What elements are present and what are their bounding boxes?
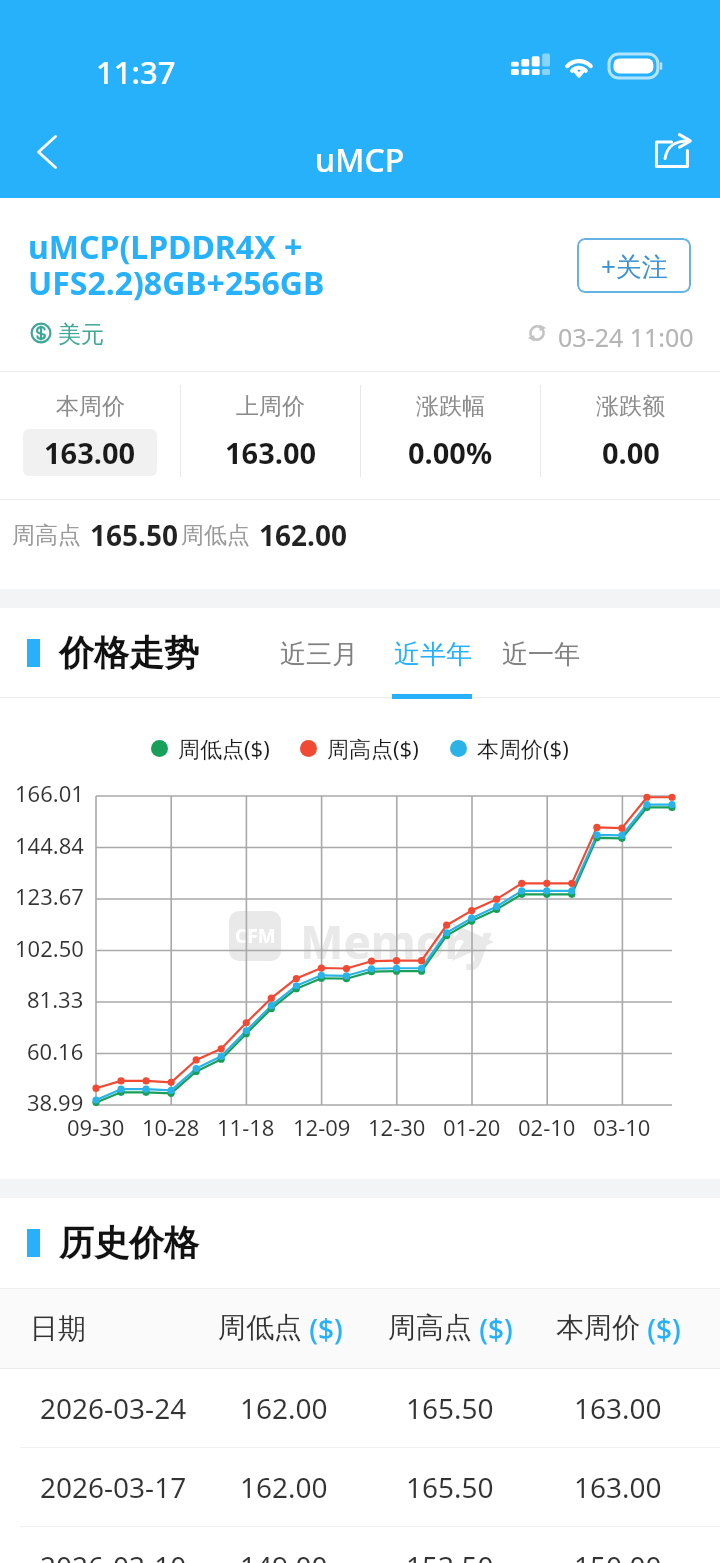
- staticText: 162.00: [240, 1389, 328, 1427]
- staticText: 涨跌幅: [416, 392, 485, 421]
- staticText: 价格走势: [59, 631, 199, 675]
- button[interactable]: 2026-03-24: [0, 1369, 720, 1447]
- staticText: 2026-03-17: [40, 1468, 187, 1506]
- staticText: 周低点($): [178, 733, 270, 763]
- staticText: 81.33: [27, 984, 84, 1014]
- staticText: 165.50: [90, 516, 178, 554]
- staticText: 0.00%: [408, 433, 493, 472]
- button[interactable]: 近半年: [376, 608, 489, 698]
- staticText: 102.50: [15, 933, 84, 963]
- staticText: 163.00: [574, 1389, 662, 1427]
- staticText: 11:37: [96, 51, 176, 93]
- button[interactable]: 2026-03-10: [0, 1527, 720, 1563]
- staticText: 本周价($): [477, 733, 569, 763]
- staticText: 165.50: [406, 1468, 494, 1506]
- staticText: ($): [302, 1310, 343, 1348]
- button[interactable]: 上周价: [181, 372, 360, 499]
- staticText: 12-30: [368, 1112, 426, 1142]
- staticText: Memory: [300, 910, 492, 973]
- staticText: 03-24 11:00: [558, 320, 694, 354]
- staticText: 周低点: [181, 521, 250, 550]
- button[interactable]: 本周价: [0, 372, 180, 499]
- staticText: ($): [472, 1310, 513, 1348]
- staticText: CFM: [235, 923, 276, 949]
- staticText: 02-10: [518, 1112, 576, 1142]
- staticText: 日期: [30, 1311, 86, 1346]
- staticText: 153.50: [406, 1547, 494, 1563]
- staticText: 美元: [58, 320, 104, 349]
- staticText: 涨跌额: [596, 392, 665, 421]
- staticText: 09-30: [67, 1112, 125, 1142]
- staticText: 近半年: [394, 638, 472, 671]
- staticText: 163.00: [44, 433, 136, 472]
- staticText: 12-09: [293, 1112, 351, 1142]
- staticText: 周低点: [218, 1310, 302, 1345]
- button[interactable]: 近一年: [484, 608, 597, 698]
- staticText: 03-10: [593, 1112, 651, 1142]
- button[interactable]: +关注: [577, 238, 691, 293]
- button[interactable]: Back: [14, 118, 80, 186]
- button[interactable]: 近三月: [262, 608, 375, 698]
- staticText: 2026-03-10: [40, 1547, 187, 1563]
- staticText: 163.00: [574, 1468, 662, 1506]
- staticText: 60.16: [27, 1036, 84, 1066]
- staticText: uMCP: [315, 138, 405, 182]
- staticText: 周高点: [388, 1310, 472, 1345]
- staticText: 上周价: [236, 392, 305, 421]
- staticText: 0.00: [602, 433, 660, 472]
- staticText: 2026-03-24: [40, 1389, 187, 1427]
- staticText: 144.84: [15, 830, 84, 860]
- staticText: 162.00: [259, 516, 347, 554]
- button[interactable]: 2026-03-17: [0, 1448, 720, 1526]
- staticText: 165.50: [406, 1389, 494, 1427]
- staticText: 周高点($): [327, 733, 419, 763]
- staticText: 近一年: [502, 638, 580, 671]
- staticText: uMCP(LPDDR4X + UFS2.2)8GB+256GB: [28, 225, 468, 305]
- staticText: +关注: [601, 248, 668, 284]
- staticText: 162.00: [240, 1468, 328, 1506]
- staticText: 本周价: [56, 392, 125, 421]
- staticText: 38.99: [27, 1087, 84, 1117]
- button[interactable]: Share: [640, 118, 706, 186]
- staticText: 123.67: [15, 881, 84, 911]
- staticText: 01-20: [443, 1112, 501, 1142]
- staticText: ($): [640, 1310, 681, 1348]
- staticText: 周高点: [12, 521, 81, 550]
- staticText: 163.00: [225, 433, 317, 472]
- staticText: 10-28: [142, 1112, 200, 1142]
- staticText: 150.00: [574, 1547, 662, 1563]
- staticText: 近三月: [280, 638, 358, 671]
- staticText: 历史价格: [59, 1221, 199, 1265]
- staticText: 149.00: [240, 1547, 328, 1563]
- staticText: 166.01: [15, 778, 84, 808]
- button[interactable]: 涨跌额: [541, 372, 720, 499]
- button[interactable]: 涨跌幅: [361, 372, 540, 499]
- staticText: 11-18: [217, 1112, 275, 1142]
- staticText: 本周价: [556, 1310, 640, 1345]
